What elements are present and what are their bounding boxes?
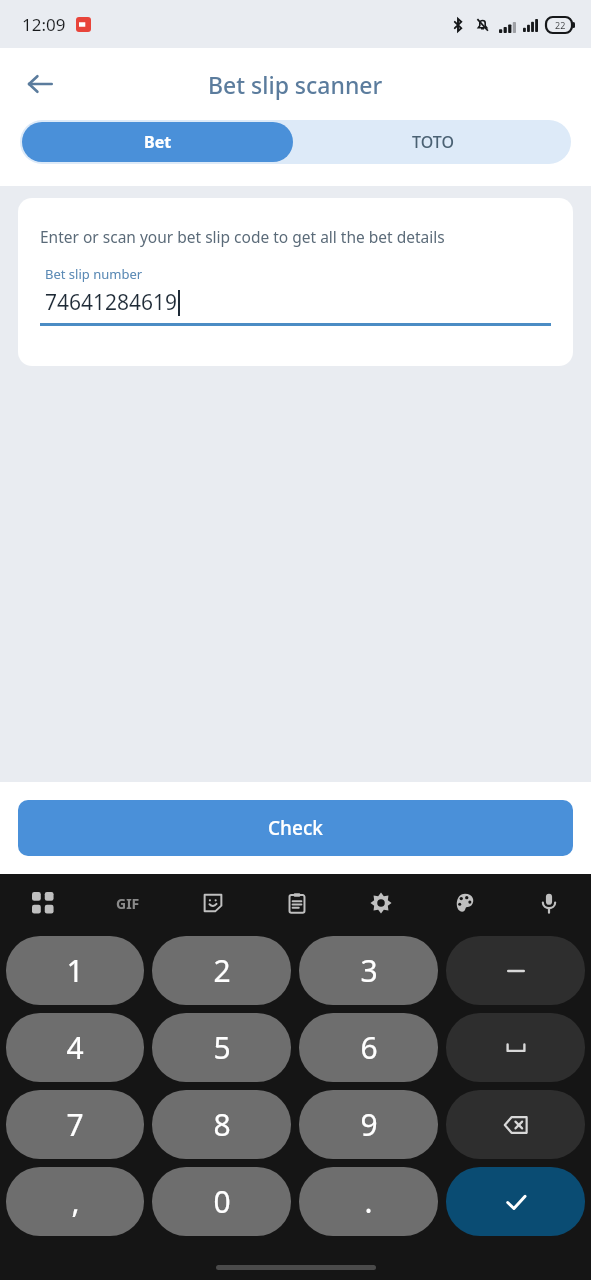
button[interactable]: 4 bbox=[6, 1013, 144, 1082]
button[interactable]: Check bbox=[18, 800, 573, 856]
button[interactable]: Voice input bbox=[507, 874, 591, 932]
staticText: 5 bbox=[213, 1027, 231, 1068]
button[interactable]: . bbox=[299, 1167, 438, 1236]
button[interactable]: 9 bbox=[299, 1090, 438, 1159]
staticText: 12:09 bbox=[22, 13, 66, 36]
button[interactable]: GIF bbox=[85, 874, 170, 932]
button[interactable]: 8 bbox=[152, 1090, 291, 1159]
staticText: Bet slip number bbox=[45, 265, 143, 283]
button[interactable]: 0 bbox=[152, 1167, 291, 1236]
button[interactable]: Themes bbox=[423, 874, 507, 932]
staticText: 2 bbox=[213, 950, 231, 991]
staticText: Check bbox=[268, 815, 323, 841]
staticText: 1 bbox=[66, 950, 84, 991]
button[interactable]: Bet bbox=[22, 122, 293, 162]
button[interactable]: 7 bbox=[6, 1090, 144, 1159]
button[interactable]: 3 bbox=[299, 936, 438, 1005]
button[interactable]: 5 bbox=[152, 1013, 291, 1082]
staticText: , bbox=[71, 1181, 80, 1222]
staticText: TOTO bbox=[412, 131, 454, 153]
staticText: 22 bbox=[555, 19, 566, 31]
button[interactable]: Back bbox=[14, 58, 66, 110]
staticText: 3 bbox=[360, 950, 378, 991]
button[interactable]: 6 bbox=[299, 1013, 438, 1082]
button[interactable]: 1 bbox=[6, 936, 144, 1005]
staticText: 9 bbox=[360, 1104, 378, 1145]
staticText: 7 bbox=[66, 1104, 84, 1145]
button[interactable]: TOTO bbox=[295, 120, 571, 164]
button[interactable]: , bbox=[6, 1167, 144, 1236]
staticText: 74641284619 bbox=[45, 288, 178, 317]
button[interactable]: Settings bbox=[339, 874, 423, 932]
staticText: GIF bbox=[116, 894, 140, 913]
button[interactable]: Backspace bbox=[446, 1090, 585, 1159]
button[interactable]: Apps bbox=[0, 874, 85, 932]
staticText: 4 bbox=[66, 1027, 84, 1068]
button[interactable]: Enter bbox=[446, 1167, 585, 1236]
staticText: Bet slip scanner bbox=[208, 69, 383, 100]
staticText: 0 bbox=[213, 1181, 231, 1222]
button[interactable]: Stickers bbox=[170, 874, 255, 932]
button[interactable]: Minus bbox=[446, 936, 585, 1005]
staticText: Bet bbox=[144, 131, 172, 153]
button[interactable]: 2 bbox=[152, 936, 291, 1005]
staticText: . bbox=[364, 1181, 373, 1222]
staticText: 6 bbox=[360, 1027, 378, 1068]
button[interactable]: Clipboard bbox=[255, 874, 339, 932]
staticText: Enter or scan your bet slip code to get … bbox=[40, 226, 445, 247]
staticText: 8 bbox=[213, 1104, 231, 1145]
button[interactable]: Space bbox=[446, 1013, 585, 1082]
